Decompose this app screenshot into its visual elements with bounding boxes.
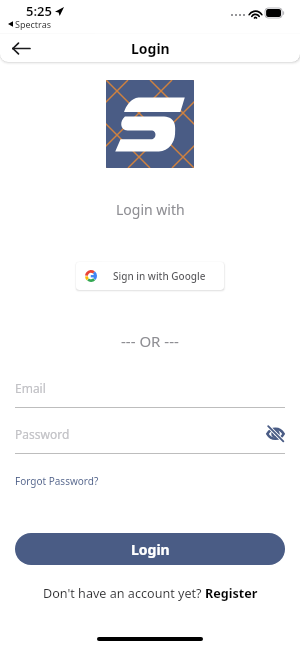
staticText: Forgot Password? xyxy=(15,474,99,488)
staticText: --- OR --- xyxy=(121,331,179,351)
button[interactable]: Back xyxy=(8,35,34,61)
staticText: Login xyxy=(131,540,170,559)
staticText: Don't have an account yet? xyxy=(43,585,205,602)
staticText: Login xyxy=(131,39,170,58)
staticText: Sign in with Google xyxy=(113,269,206,283)
staticText: 5:25 xyxy=(26,2,52,20)
button[interactable]: Forgot Password? xyxy=(15,474,99,488)
button[interactable]: Login xyxy=(15,533,285,565)
button[interactable]: Sign in with Google xyxy=(76,262,224,290)
staticText: Password xyxy=(15,426,70,442)
button[interactable]: Toggle password visibility xyxy=(266,424,285,443)
staticText: Spectras xyxy=(15,18,52,30)
staticText: Email xyxy=(15,380,46,396)
button[interactable]: Register xyxy=(205,585,258,602)
staticText: Login with xyxy=(116,200,185,219)
staticText: Register xyxy=(205,585,258,602)
